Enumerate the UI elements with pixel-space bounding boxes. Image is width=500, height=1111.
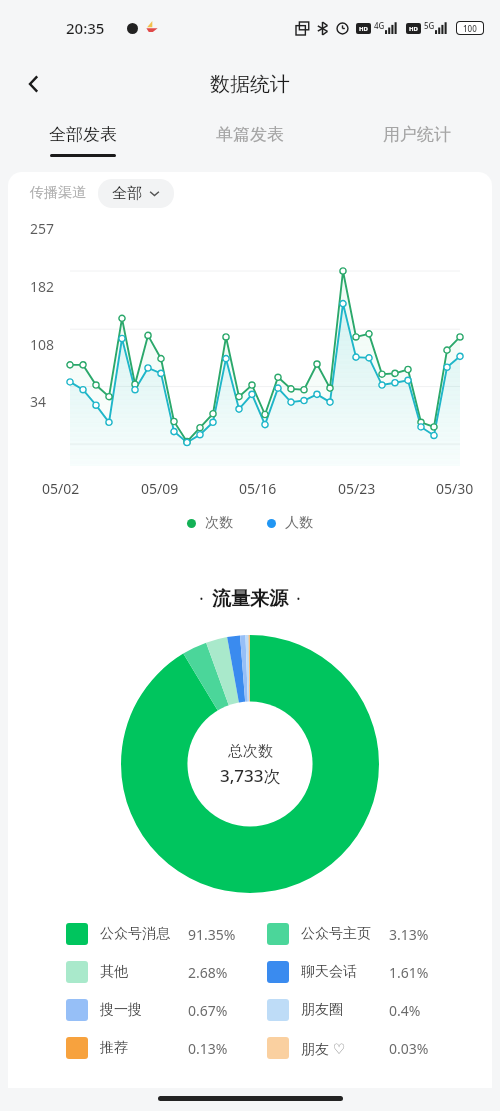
staticText: 数据统计: [210, 72, 290, 97]
staticText: 公众号消息: [100, 925, 188, 943]
button[interactable]: Back: [14, 64, 54, 104]
staticText: 1.61%: [389, 963, 451, 982]
staticText: ·: [199, 586, 204, 611]
staticText: 搜一搜: [100, 1001, 188, 1019]
staticText: 20:35: [66, 18, 105, 38]
staticText: 4G: [374, 20, 385, 31]
staticText: 单篇发表: [216, 124, 284, 145]
staticText: 34: [30, 392, 66, 411]
staticText: 朋友圈: [301, 1001, 389, 1019]
staticText: 3,733次: [220, 764, 281, 787]
staticText: 5G: [424, 20, 435, 31]
staticText: 用户统计: [383, 124, 451, 145]
button[interactable]: 用户统计: [347, 112, 487, 154]
staticText: 传播渠道: [30, 184, 86, 202]
button[interactable]: 其他: [66, 961, 267, 983]
staticText: 次数: [205, 514, 233, 532]
staticText: 91.35%: [188, 925, 250, 944]
button[interactable]: 公众号消息: [66, 923, 267, 945]
staticText: 05/02: [42, 479, 80, 498]
staticText: 2.68%: [188, 963, 250, 982]
staticText: 05/09: [141, 479, 179, 498]
staticText: 100: [463, 23, 477, 34]
staticText: 其他: [100, 963, 188, 981]
staticText: 公众号主页: [301, 925, 389, 943]
staticText: 257: [30, 219, 66, 238]
staticText: 人数: [285, 514, 313, 532]
staticText: 182: [30, 277, 66, 296]
staticText: 3.13%: [389, 925, 451, 944]
staticText: 总次数: [228, 742, 273, 761]
staticText: 朋友 ♡: [301, 1039, 389, 1058]
staticText: 推荐: [100, 1039, 188, 1057]
button[interactable]: 搜一搜: [66, 999, 267, 1021]
button[interactable]: 全部发表: [13, 112, 153, 157]
staticText: 05/23: [338, 479, 376, 498]
button[interactable]: 公众号主页: [267, 923, 468, 945]
staticText: HD: [359, 25, 368, 33]
button[interactable]: 朋友圈: [267, 999, 468, 1021]
button[interactable]: 聊天会话: [267, 961, 468, 983]
staticText: 0.4%: [389, 1001, 451, 1020]
button[interactable]: 单篇发表: [180, 112, 320, 154]
staticText: 全部: [112, 184, 142, 203]
staticText: 05/16: [239, 479, 277, 498]
staticText: 聊天会话: [301, 963, 389, 981]
staticText: ·: [296, 586, 301, 611]
staticText: 流量来源: [212, 587, 288, 611]
button[interactable]: 朋友 ♡: [267, 1037, 468, 1059]
button[interactable]: 全部: [98, 179, 174, 208]
button[interactable]: 推荐: [66, 1037, 267, 1059]
staticText: 108: [30, 335, 66, 354]
staticText: HD: [409, 25, 418, 33]
staticText: 05/30: [436, 479, 474, 498]
staticText: 全部发表: [49, 124, 117, 145]
staticText: 0.13%: [188, 1039, 250, 1058]
staticText: 0.03%: [389, 1039, 451, 1058]
staticText: 0.67%: [188, 1001, 250, 1020]
